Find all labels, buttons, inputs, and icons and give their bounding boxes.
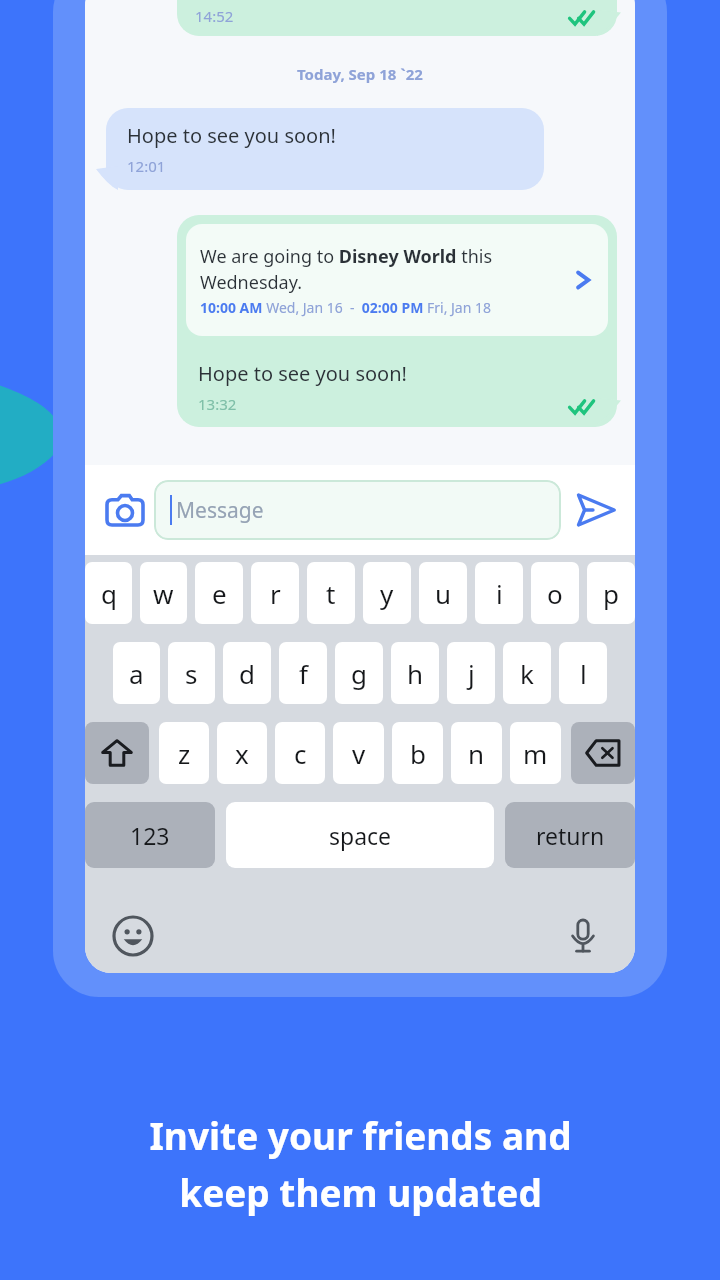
button[interactable]: u	[419, 562, 467, 624]
button[interactable]: l	[559, 642, 607, 704]
button[interactable]: s	[168, 642, 215, 704]
button[interactable]: p	[587, 562, 635, 624]
staticText: n	[468, 736, 485, 771]
staticText: m	[523, 736, 548, 771]
button[interactable]: q	[85, 562, 132, 624]
button[interactable]: Hope to see you soon!	[106, 108, 544, 190]
staticText: Invite your friends and keep them update…	[149, 1110, 572, 1218]
button[interactable]: Message	[154, 480, 561, 540]
staticText: space	[329, 820, 392, 851]
button[interactable]: n	[451, 722, 502, 784]
staticText: 123	[130, 820, 170, 851]
staticText: 13:32	[198, 394, 237, 414]
button[interactable]: t	[307, 562, 355, 624]
staticText: l	[580, 656, 587, 691]
button[interactable]: v	[333, 722, 384, 784]
button[interactable]: h	[391, 642, 439, 704]
button[interactable]: Shift	[85, 722, 149, 784]
staticText: i	[496, 576, 503, 611]
staticText: g	[351, 656, 367, 691]
staticText: o	[547, 576, 563, 611]
button[interactable]: Camera	[102, 487, 148, 533]
button[interactable]: g	[335, 642, 383, 704]
button[interactable]: f	[279, 642, 327, 704]
staticText: b	[410, 736, 426, 771]
staticText: u	[435, 576, 452, 611]
staticText: r	[270, 576, 281, 611]
staticText: Today, Sep 18 `22	[297, 64, 423, 84]
staticText: We are going to Disney World this Wednes…	[200, 244, 558, 294]
button[interactable]: e	[195, 562, 243, 624]
button[interactable]: Send	[571, 485, 621, 535]
staticText: Hope to see you soon!	[198, 360, 407, 387]
button[interactable]: 14:52	[177, 0, 617, 36]
staticText: f	[299, 656, 308, 691]
button[interactable]: z	[159, 722, 209, 784]
button[interactable]: return	[505, 802, 635, 868]
staticText: Message	[176, 496, 264, 525]
staticText: 10:00 AM Wed, Jan 16 - 02:00 PM Fri, Jan…	[200, 298, 492, 317]
staticText: e	[212, 576, 227, 611]
staticText: p	[603, 576, 619, 611]
staticText: k	[520, 656, 534, 691]
button[interactable]: Voice input	[559, 912, 607, 960]
staticText: z	[178, 736, 191, 771]
button[interactable]: 123	[85, 802, 215, 868]
staticText: d	[239, 656, 255, 691]
button[interactable]: j	[447, 642, 495, 704]
staticText: x	[235, 736, 249, 771]
staticText: t	[326, 576, 336, 611]
button[interactable]: b	[392, 722, 443, 784]
staticText: v	[352, 736, 366, 771]
button[interactable]: m	[510, 722, 561, 784]
button[interactable]: d	[223, 642, 271, 704]
button[interactable]: i	[475, 562, 523, 624]
staticText: return	[536, 820, 605, 851]
staticText: j	[468, 656, 475, 691]
staticText: 14:52	[195, 6, 234, 26]
staticText: w	[153, 576, 174, 611]
button[interactable]: a	[113, 642, 160, 704]
button[interactable]: c	[275, 722, 325, 784]
button[interactable]: Backspace	[571, 722, 635, 784]
staticText: Hope to see you soon!	[127, 122, 336, 149]
button[interactable]: r	[251, 562, 299, 624]
button[interactable]: x	[217, 722, 267, 784]
button[interactable]: Emoji	[109, 912, 157, 960]
staticText: h	[407, 656, 424, 691]
button[interactable]: o	[531, 562, 579, 624]
button[interactable]: space	[226, 802, 494, 868]
staticText: y	[380, 576, 394, 611]
staticText: 12:01	[127, 156, 166, 176]
staticText: a	[129, 656, 144, 691]
staticText: c	[294, 736, 307, 771]
button[interactable]: k	[503, 642, 551, 704]
button[interactable]: w	[140, 562, 187, 624]
staticText: s	[185, 656, 198, 691]
button[interactable]: y	[363, 562, 411, 624]
button[interactable]: We are going to Disney World this Wednes…	[186, 224, 608, 336]
staticText: q	[101, 576, 117, 611]
